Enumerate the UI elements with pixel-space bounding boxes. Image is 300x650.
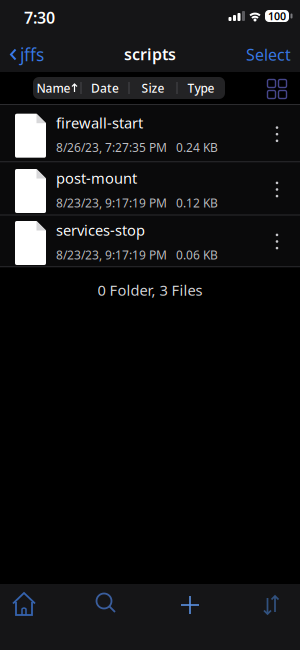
staticText: Type [187, 80, 214, 96]
staticText: scripts [124, 43, 176, 65]
staticText: 0.06 KB [176, 247, 218, 263]
button[interactable]: Grid view [266, 78, 287, 99]
staticText: Name [36, 80, 70, 96]
staticText: 8/23/23, 9:17:19 PM [56, 195, 167, 211]
staticText: jffs [20, 43, 44, 66]
staticText: 100 [268, 9, 286, 23]
button[interactable]: post-mount [0, 163, 268, 216]
button[interactable]: Size [129, 77, 176, 99]
staticText: firewall-start [56, 113, 143, 132]
staticText: 8/26/23, 7:27:35 PM [56, 139, 167, 155]
button[interactable]: More actions for post-mount [261, 163, 293, 216]
button[interactable]: Sort [249, 586, 293, 626]
button[interactable]: Name [33, 77, 80, 99]
staticText: 0.12 KB [176, 195, 218, 211]
button[interactable]: services-stop [0, 215, 268, 268]
staticText: 7:30 [24, 7, 55, 28]
button[interactable]: Search [85, 585, 129, 625]
staticText: services-stop [56, 220, 145, 240]
button[interactable]: Home [3, 586, 47, 626]
button[interactable]: More actions for services-stop [261, 215, 293, 268]
button[interactable]: Select [238, 39, 298, 69]
button[interactable]: firewall-start [0, 108, 268, 161]
staticText: post-mount [56, 168, 137, 188]
staticText: Date [91, 80, 119, 96]
button[interactable]: Type [177, 77, 224, 99]
staticText: 8/23/23, 9:17:19 PM [56, 247, 167, 263]
button[interactable]: More actions for firewall-start [261, 108, 293, 161]
staticText: Select [246, 44, 291, 65]
button[interactable]: Back to jffs [6, 39, 48, 69]
button[interactable]: Date [81, 77, 128, 99]
staticText: 0.24 KB [176, 139, 218, 155]
staticText: Size [141, 80, 164, 96]
staticText: 0 Folder, 3 Files [97, 280, 202, 300]
button[interactable]: Add [168, 585, 212, 625]
